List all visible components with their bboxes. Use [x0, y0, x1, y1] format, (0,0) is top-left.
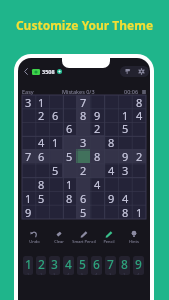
button[interactable]: [35, 205, 48, 219]
button[interactable]: [48, 205, 62, 219]
button[interactable]: 6: [62, 121, 76, 135]
button[interactable]: 2: [76, 163, 90, 177]
button[interactable]: Settings: [134, 66, 149, 77]
button[interactable]: 3: [22, 95, 35, 108]
button[interactable]: Clear: [46, 230, 71, 244]
button[interactable]: 4: [104, 163, 118, 177]
button[interactable]: Hints: [121, 230, 146, 244]
button[interactable]: 4: [63, 256, 74, 275]
button[interactable]: [104, 95, 118, 108]
button[interactable]: 8: [118, 205, 132, 219]
button[interactable]: [22, 163, 35, 177]
button[interactable]: [132, 177, 146, 191]
button[interactable]: 3: [118, 163, 132, 177]
button[interactable]: [48, 95, 62, 108]
button[interactable]: [118, 95, 132, 108]
button[interactable]: [104, 177, 118, 191]
button[interactable]: [118, 135, 132, 149]
button[interactable]: Theme: [120, 66, 134, 77]
button[interactable]: 6: [48, 108, 62, 121]
button[interactable]: 8: [90, 149, 104, 163]
button[interactable]: 4: [35, 135, 48, 149]
button[interactable]: 7: [76, 95, 90, 108]
button[interactable]: 5: [77, 256, 88, 275]
button[interactable]: 1: [62, 177, 76, 191]
button[interactable]: 1: [35, 95, 48, 108]
button[interactable]: [22, 135, 35, 149]
button[interactable]: [62, 95, 76, 108]
button[interactable]: 8: [76, 108, 90, 121]
button[interactable]: Pencil: [96, 230, 121, 244]
button[interactable]: 6: [35, 149, 48, 163]
button[interactable]: 1: [23, 256, 33, 275]
button[interactable]: 2: [35, 108, 48, 121]
button[interactable]: 4: [132, 108, 146, 121]
button[interactable]: [132, 163, 146, 177]
button[interactable]: [132, 191, 146, 205]
button[interactable]: [132, 135, 146, 149]
button[interactable]: 2: [132, 149, 146, 163]
button[interactable]: 8: [119, 256, 130, 275]
button[interactable]: [90, 205, 104, 219]
button[interactable]: 5: [48, 163, 62, 177]
button[interactable]: 2: [90, 121, 104, 135]
button[interactable]: 5: [118, 121, 132, 135]
button[interactable]: 3: [49, 256, 60, 275]
button[interactable]: [104, 205, 118, 219]
button[interactable]: 4: [90, 177, 104, 191]
button[interactable]: [62, 108, 76, 121]
button[interactable]: 1: [118, 108, 132, 121]
button[interactable]: 9: [22, 205, 35, 219]
button[interactable]: 7: [105, 256, 116, 275]
button[interactable]: 9: [90, 108, 104, 121]
button[interactable]: [118, 177, 132, 191]
button[interactable]: Back: [21, 65, 30, 78]
button[interactable]: [104, 121, 118, 135]
button[interactable]: 8: [104, 135, 118, 149]
button[interactable]: [35, 163, 48, 177]
button[interactable]: [48, 121, 62, 135]
button[interactable]: [35, 121, 48, 135]
button[interactable]: 7: [22, 149, 35, 163]
button[interactable]: 5: [35, 191, 48, 205]
button[interactable]: 9: [104, 191, 118, 205]
button[interactable]: [132, 121, 146, 135]
button[interactable]: 5: [76, 205, 90, 219]
button[interactable]: 1: [22, 191, 35, 205]
button[interactable]: [22, 108, 35, 121]
button[interactable]: [48, 177, 62, 191]
button[interactable]: 9: [118, 149, 132, 163]
button[interactable]: 4: [118, 191, 132, 205]
button[interactable]: [22, 177, 35, 191]
button[interactable]: 8: [62, 191, 76, 205]
button[interactable]: 8: [132, 95, 146, 108]
button[interactable]: [90, 191, 104, 205]
button[interactable]: 2: [36, 256, 46, 275]
button[interactable]: 1: [132, 205, 146, 219]
button[interactable]: 3508: [32, 65, 62, 78]
button[interactable]: Undo: [22, 230, 46, 244]
button[interactable]: 5: [62, 149, 76, 163]
button[interactable]: [90, 95, 104, 108]
button[interactable]: Pause: [141, 89, 146, 94]
button[interactable]: [48, 191, 62, 205]
button[interactable]: [22, 121, 35, 135]
button[interactable]: [62, 205, 76, 219]
button[interactable]: 8: [35, 177, 48, 191]
button[interactable]: 3: [76, 135, 90, 149]
button[interactable]: 6: [91, 256, 102, 275]
button[interactable]: [104, 108, 118, 121]
button[interactable]: 6: [76, 191, 90, 205]
button[interactable]: [76, 149, 90, 163]
button[interactable]: 9: [133, 256, 144, 275]
button[interactable]: Smart Pencil: [71, 230, 96, 244]
button[interactable]: 1: [48, 135, 62, 149]
